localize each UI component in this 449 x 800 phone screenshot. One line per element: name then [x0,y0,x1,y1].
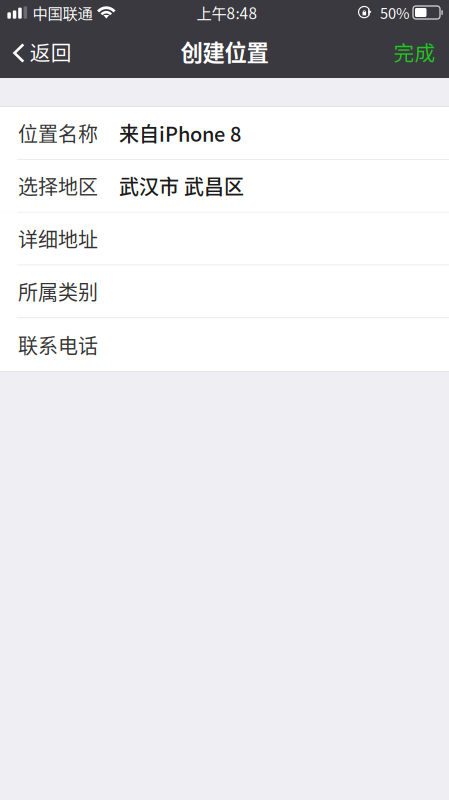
button[interactable]: 返回 [0,29,72,77]
staticText: 返回 [30,37,72,67]
staticText: 完成 [393,37,435,67]
staticText: 位置名称 [18,118,98,147]
staticText: 来自iPhone 8 [119,118,241,147]
staticText: 详细地址 [18,224,98,253]
staticText: 50% [380,2,410,23]
staticText: 所属类别 [18,277,98,306]
staticText: 选择地区 [18,171,98,200]
staticText: 创建位置 [180,35,268,68]
staticText: 武汉市 武昌区 [119,171,244,200]
button[interactable]: 完成 [393,29,449,77]
staticText: 上午8:48 [196,1,257,24]
button[interactable]: 详细地址 [0,213,449,265]
button[interactable]: 所属类别 [0,265,449,318]
button[interactable]: 联系电话 [0,318,449,371]
staticText: 联系电话 [18,330,98,359]
staticText: 中国联通 [32,1,92,24]
button[interactable]: 选择地区 [0,160,449,213]
button[interactable]: 位置名称 [0,107,449,160]
